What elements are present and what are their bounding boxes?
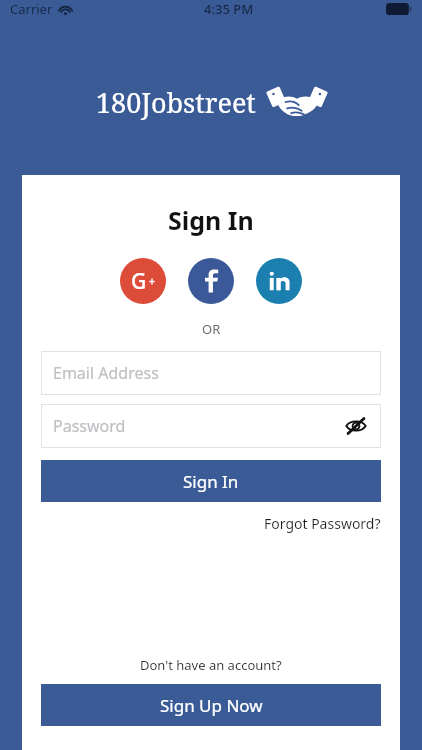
button[interactable]: Sign in with Google (120, 258, 166, 304)
button[interactable]: Sign In (41, 460, 381, 502)
staticText: Email Address (53, 362, 373, 384)
staticText: 4:35 PM (204, 0, 254, 18)
staticText: Sign In (183, 470, 239, 493)
button[interactable]: Password (41, 404, 381, 448)
staticText: Sign Up Now (160, 694, 263, 717)
staticText: OR (202, 320, 221, 338)
staticText: 180Jobstreet (96, 84, 256, 121)
button[interactable]: Email Address (41, 351, 381, 395)
staticText: G (131, 267, 147, 296)
staticText: Sign In (168, 203, 254, 237)
staticText: Don't have an account? (140, 656, 282, 674)
staticText: Forgot Password? (264, 514, 381, 533)
button[interactable]: Sign in with LinkedIn (256, 258, 302, 304)
staticText: Carrier (10, 0, 53, 18)
button[interactable]: Sign Up Now (41, 684, 381, 726)
staticText: Password (53, 415, 339, 437)
button[interactable]: Show password (339, 409, 373, 443)
button[interactable]: Sign in with Facebook (188, 258, 234, 304)
button[interactable]: Forgot Password? (264, 514, 381, 533)
